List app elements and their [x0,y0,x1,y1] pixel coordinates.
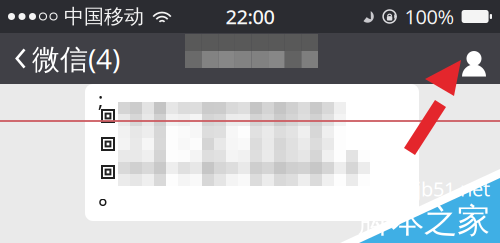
staticText: 100% [405,3,455,30]
staticText: 22:00 [225,3,274,30]
staticText: 中国移动 [64,4,144,29]
staticText: jb51.net [416,175,490,202]
staticText: 微信(4) [32,40,120,77]
staticText: 脚本之家 [358,200,490,241]
button[interactable] [85,102,419,130]
button[interactable]: 微信(4) [0,33,135,84]
staticText: ° [98,192,108,222]
staticText: ; [98,86,103,113]
button[interactable] [85,130,419,158]
button[interactable] [85,158,419,186]
button[interactable]: Contact info [448,33,500,84]
